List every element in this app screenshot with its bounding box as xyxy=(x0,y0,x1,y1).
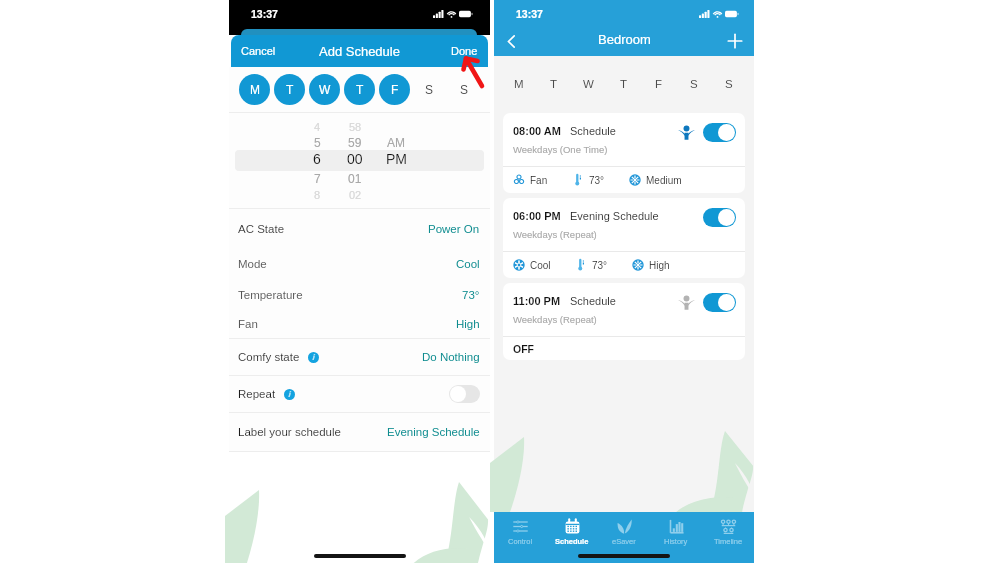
button[interactable]: Cancel xyxy=(231,38,286,64)
staticText: T xyxy=(550,78,558,91)
staticText: Fan xyxy=(238,318,258,331)
button[interactable]: Toggle schedule xyxy=(703,208,736,227)
button[interactable]: M xyxy=(502,56,536,113)
staticText: 00 xyxy=(347,151,363,165)
staticText: History xyxy=(664,537,688,545)
staticText: Cool xyxy=(530,260,551,271)
staticText: 13:37 xyxy=(251,8,278,20)
staticText: 73° xyxy=(462,289,480,302)
staticText: 4 xyxy=(314,121,321,133)
staticText: 08:00 AM xyxy=(513,125,561,137)
staticText: Power On xyxy=(428,223,480,236)
button[interactable]: M xyxy=(239,74,270,105)
staticText: 58 xyxy=(349,121,362,133)
button[interactable]: Schedule xyxy=(546,517,598,547)
staticText: i xyxy=(288,390,291,399)
staticText: Cancel xyxy=(241,45,276,57)
button[interactable]: History xyxy=(650,517,702,547)
staticText: AC State xyxy=(238,223,285,236)
button[interactable]: Repeat xyxy=(229,376,490,412)
button[interactable]: W xyxy=(571,56,606,113)
staticText: W xyxy=(583,78,594,91)
staticText: T xyxy=(286,83,294,96)
button[interactable]: AC State xyxy=(229,209,490,249)
staticText: Comfy state xyxy=(238,351,300,364)
staticText: T xyxy=(356,83,364,96)
button[interactable]: Add schedule xyxy=(720,26,750,56)
staticText: F xyxy=(391,83,399,96)
staticText: AM xyxy=(387,136,405,149)
button[interactable]: Label your schedule xyxy=(229,413,490,451)
staticText: 13:37 xyxy=(516,8,543,20)
staticText: Schedule xyxy=(570,125,616,137)
staticText: 73° xyxy=(592,260,608,271)
staticText: W xyxy=(319,83,331,96)
button[interactable]: S xyxy=(449,74,480,105)
staticText: i xyxy=(312,353,315,362)
staticText: Control xyxy=(508,537,533,545)
button[interactable]: eSaver xyxy=(598,517,650,547)
button[interactable]: Done xyxy=(441,38,488,64)
staticText: 6 xyxy=(313,151,321,165)
button[interactable]: 08:00 AM xyxy=(503,113,745,193)
staticText: Repeat xyxy=(238,388,276,401)
button[interactable]: 11:00 PM xyxy=(503,283,745,360)
staticText: Mode xyxy=(238,258,267,271)
button[interactable]: Toggle schedule xyxy=(703,293,736,312)
button[interactable]: F xyxy=(379,74,410,105)
staticText: S xyxy=(460,83,469,96)
button[interactable]: Repeat toggle xyxy=(449,385,480,403)
button[interactable]: More information xyxy=(284,389,295,400)
button[interactable]: T xyxy=(536,56,571,113)
staticText: Weekdays (Repeat) xyxy=(513,314,597,325)
staticText: 06:00 PM xyxy=(513,210,561,222)
staticText: S xyxy=(690,78,698,91)
staticText: eSaver xyxy=(612,537,636,545)
staticText: Do Nothing xyxy=(422,351,480,364)
staticText: Bedroom xyxy=(598,32,651,47)
staticText: Schedule xyxy=(555,537,589,545)
staticText: Schedule xyxy=(570,295,616,307)
button[interactable]: S xyxy=(711,56,746,113)
button[interactable]: More information xyxy=(308,352,319,363)
button[interactable]: S xyxy=(676,56,711,113)
staticText: High xyxy=(456,318,480,331)
staticText: 5 xyxy=(314,136,321,149)
button[interactable]: 06:00 PM xyxy=(503,198,745,278)
button[interactable]: Back xyxy=(496,26,526,56)
staticText: Cool xyxy=(456,258,480,271)
staticText: S xyxy=(425,83,434,96)
button[interactable]: Control xyxy=(494,517,546,547)
button[interactable]: W xyxy=(309,74,340,105)
staticText: M xyxy=(514,78,524,91)
staticText: PM xyxy=(386,151,407,165)
staticText: Temperature xyxy=(238,289,303,302)
button[interactable]: T xyxy=(344,74,375,105)
button[interactable]: Toggle schedule xyxy=(703,123,736,142)
staticText: S xyxy=(725,78,733,91)
button[interactable]: Temperature xyxy=(229,280,490,310)
button[interactable]: S xyxy=(414,74,445,105)
staticText: Evening Schedule xyxy=(570,210,659,222)
staticText: 8 xyxy=(314,189,321,201)
button[interactable]: Comfy state xyxy=(229,339,490,375)
button[interactable]: F xyxy=(641,56,676,113)
staticText: 7 xyxy=(314,172,321,185)
button[interactable]: Timeline xyxy=(702,517,754,547)
button[interactable]: Fan xyxy=(229,310,490,338)
staticText: 11:00 PM xyxy=(513,295,561,307)
staticText: Weekdays (Repeat) xyxy=(513,229,597,240)
button[interactable]: Mode xyxy=(229,249,490,280)
staticText: OFF xyxy=(513,343,534,355)
staticText: Done xyxy=(451,45,478,57)
button[interactable]: T xyxy=(274,74,305,105)
staticText: High xyxy=(649,260,670,271)
staticText: 01 xyxy=(348,172,362,185)
staticText: Medium xyxy=(646,175,682,186)
staticText: 59 xyxy=(348,136,362,149)
staticText: F xyxy=(655,78,663,91)
button[interactable]: T xyxy=(606,56,641,113)
staticText: Add Schedule xyxy=(319,44,400,59)
staticText: 73° xyxy=(589,175,605,186)
staticText: 02 xyxy=(349,189,362,201)
